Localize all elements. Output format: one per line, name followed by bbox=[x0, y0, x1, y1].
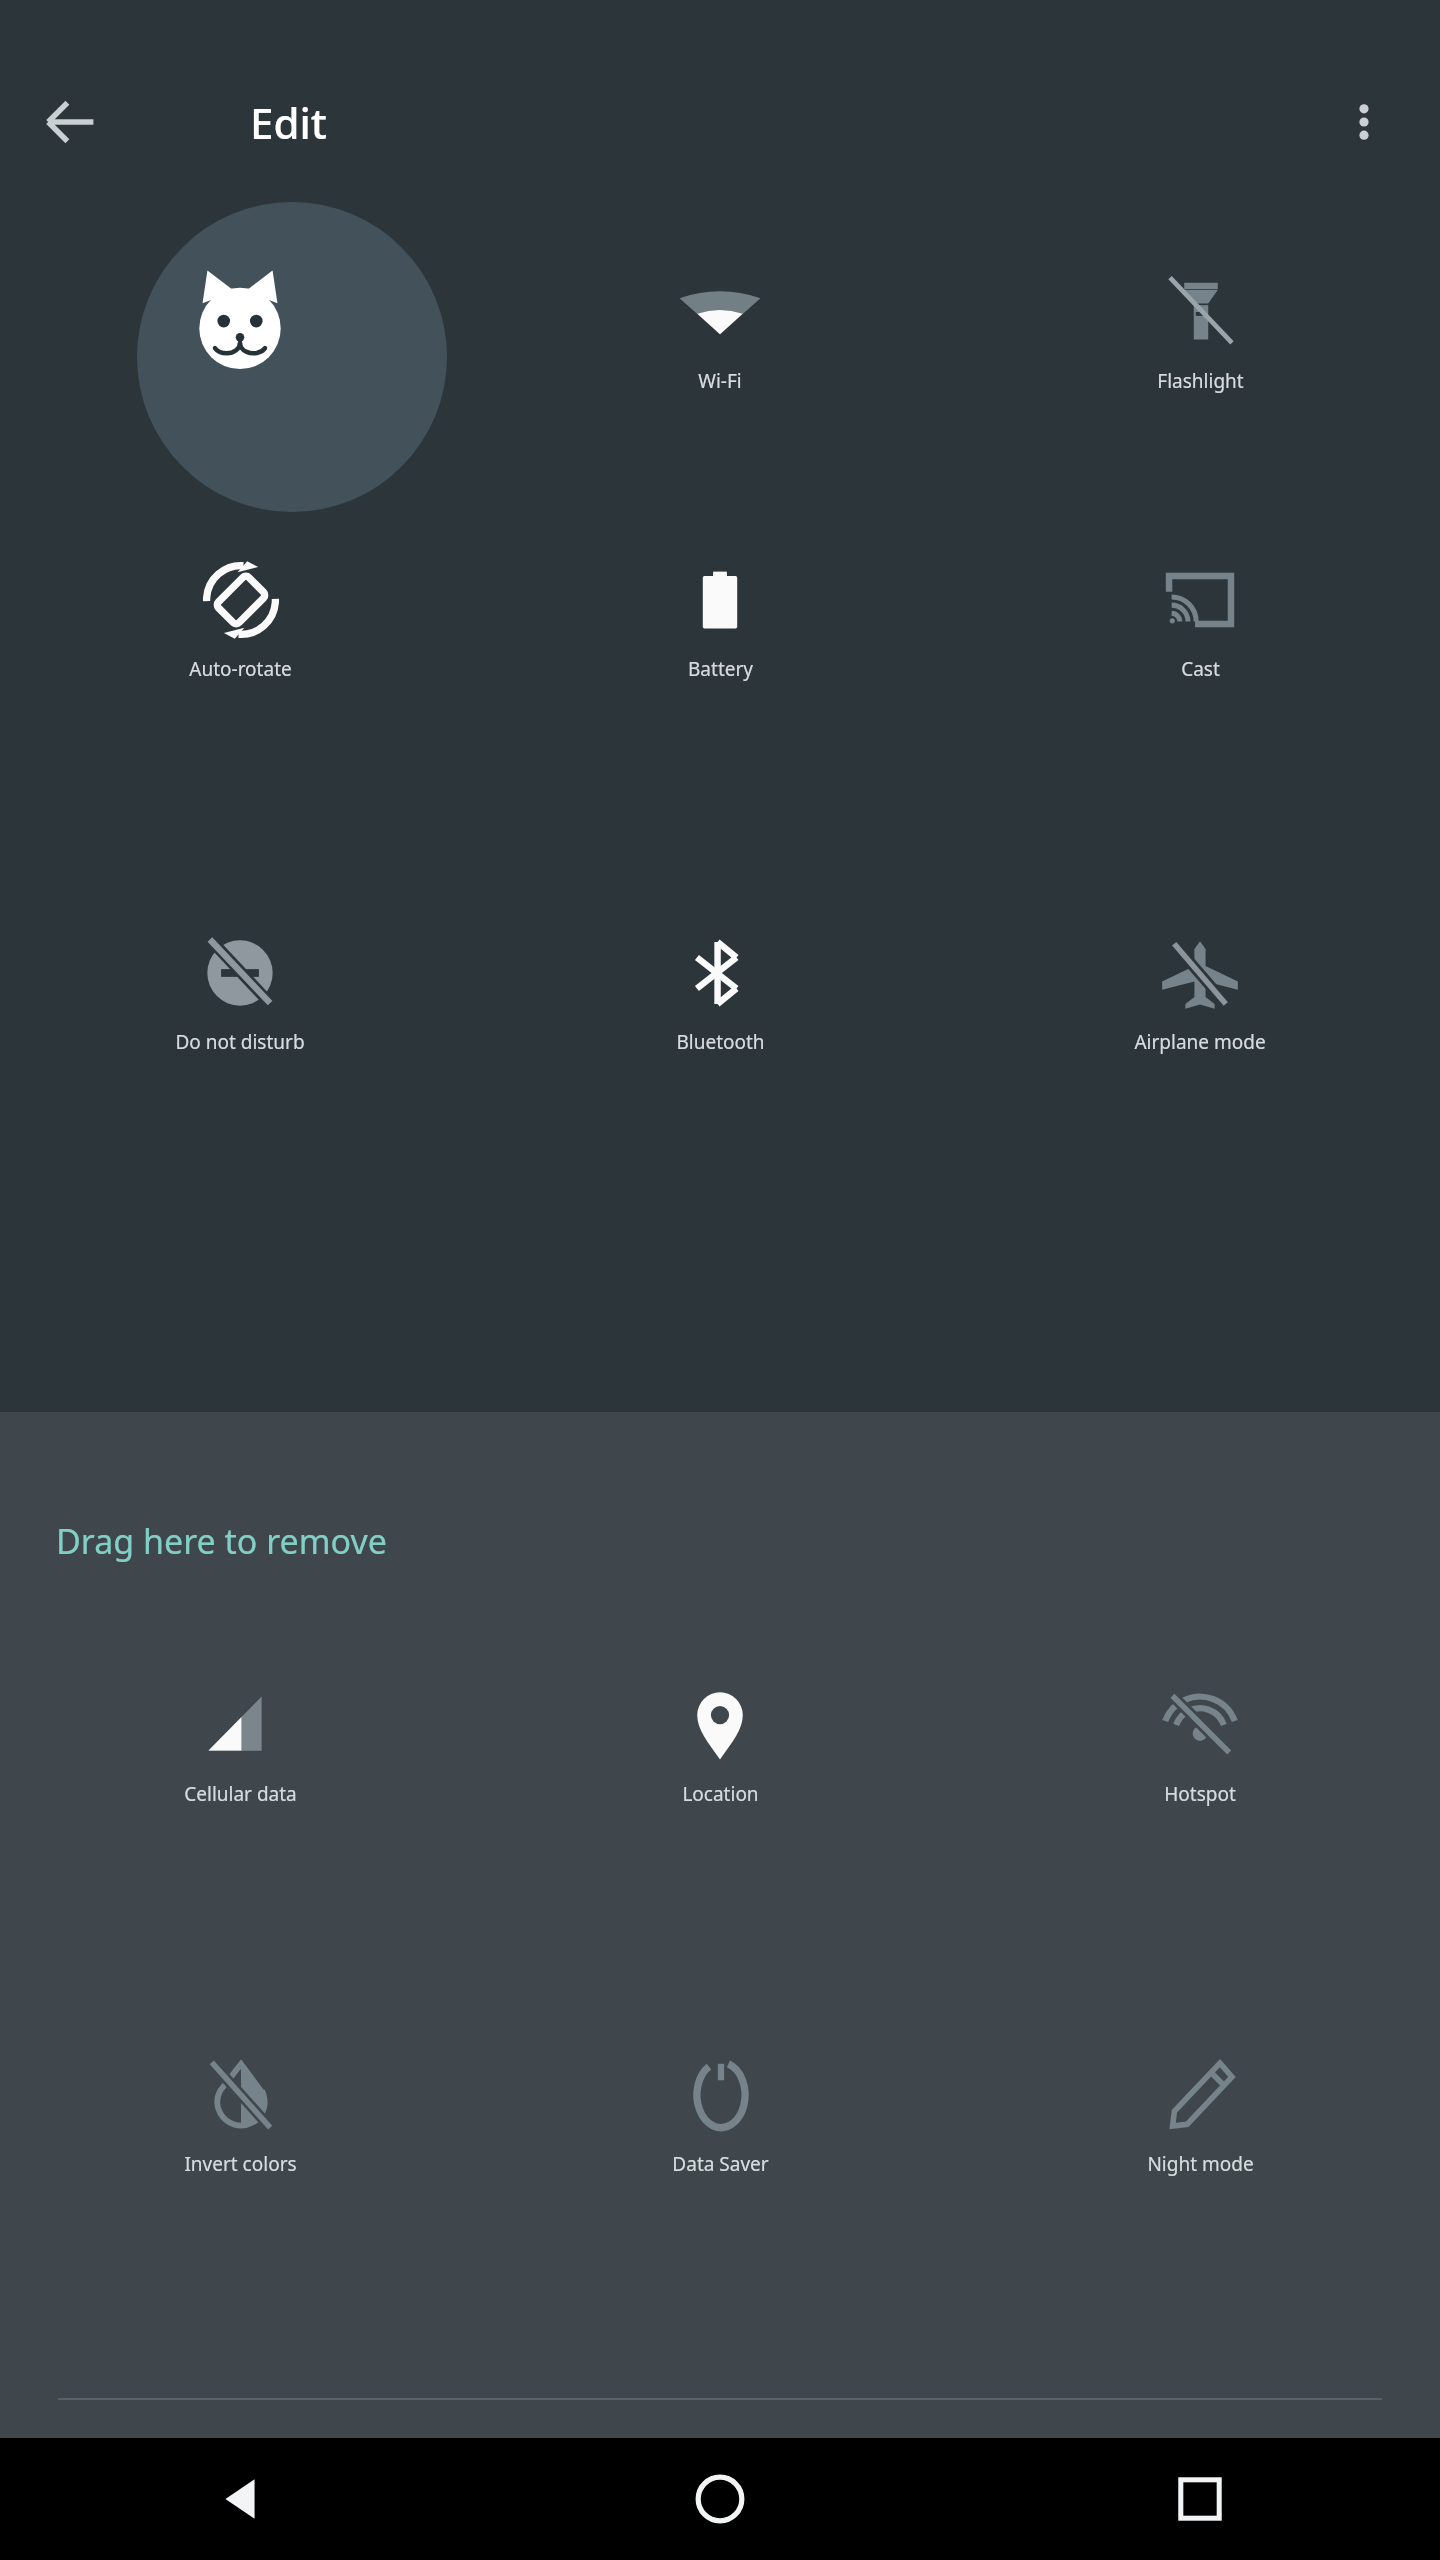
staticText: Drag here to remove bbox=[56, 1518, 387, 1564]
staticText: Night mode bbox=[1147, 2151, 1254, 2177]
button[interactable]: Airplane mode bbox=[1134, 930, 1266, 1055]
button[interactable]: Home bbox=[480, 2438, 960, 2560]
button[interactable]: Cast bbox=[1157, 557, 1243, 682]
button[interactable]: Cat tile bbox=[185, 269, 295, 379]
button[interactable]: Night mode bbox=[1147, 2052, 1254, 2177]
button[interactable]: Bluetooth bbox=[676, 930, 765, 1055]
button[interactable]: Invert colors bbox=[184, 2052, 297, 2177]
button[interactable]: Recent apps bbox=[960, 2438, 1440, 2560]
staticText: Bluetooth bbox=[676, 1029, 765, 1055]
staticText: Location bbox=[682, 1781, 759, 1807]
staticText: Cast bbox=[1181, 656, 1220, 682]
button[interactable]: Do not disturb bbox=[175, 930, 305, 1055]
button[interactable]: Drag here to remove bbox=[0, 1496, 1440, 1586]
staticText: Cellular data bbox=[184, 1781, 297, 1807]
button[interactable]: Auto-rotate bbox=[189, 557, 292, 682]
button[interactable]: Flashlight bbox=[1157, 269, 1244, 394]
staticText: Data Saver bbox=[672, 2151, 769, 2177]
staticText: Airplane mode bbox=[1134, 1029, 1266, 1055]
button[interactable]: Location bbox=[677, 1682, 763, 1807]
button[interactable]: Back bbox=[0, 2438, 480, 2560]
staticText: Hotspot bbox=[1164, 1781, 1236, 1807]
button[interactable]: Data Saver bbox=[672, 2052, 769, 2177]
staticText: Invert colors bbox=[184, 2151, 297, 2177]
button[interactable]: Wi-Fi bbox=[677, 269, 763, 394]
button[interactable]: More options bbox=[1322, 80, 1406, 164]
button[interactable]: Hotspot bbox=[1157, 1682, 1243, 1807]
staticText: Battery bbox=[688, 656, 753, 682]
staticText: Edit bbox=[250, 94, 327, 151]
button[interactable]: Cellular data bbox=[184, 1682, 297, 1807]
staticText: Auto-rotate bbox=[189, 656, 292, 682]
staticText: Do not disturb bbox=[175, 1029, 305, 1055]
staticText: Wi-Fi bbox=[698, 368, 742, 394]
staticText: Flashlight bbox=[1157, 368, 1244, 394]
button[interactable]: Battery bbox=[677, 557, 763, 682]
button[interactable]: Back bbox=[28, 80, 112, 164]
